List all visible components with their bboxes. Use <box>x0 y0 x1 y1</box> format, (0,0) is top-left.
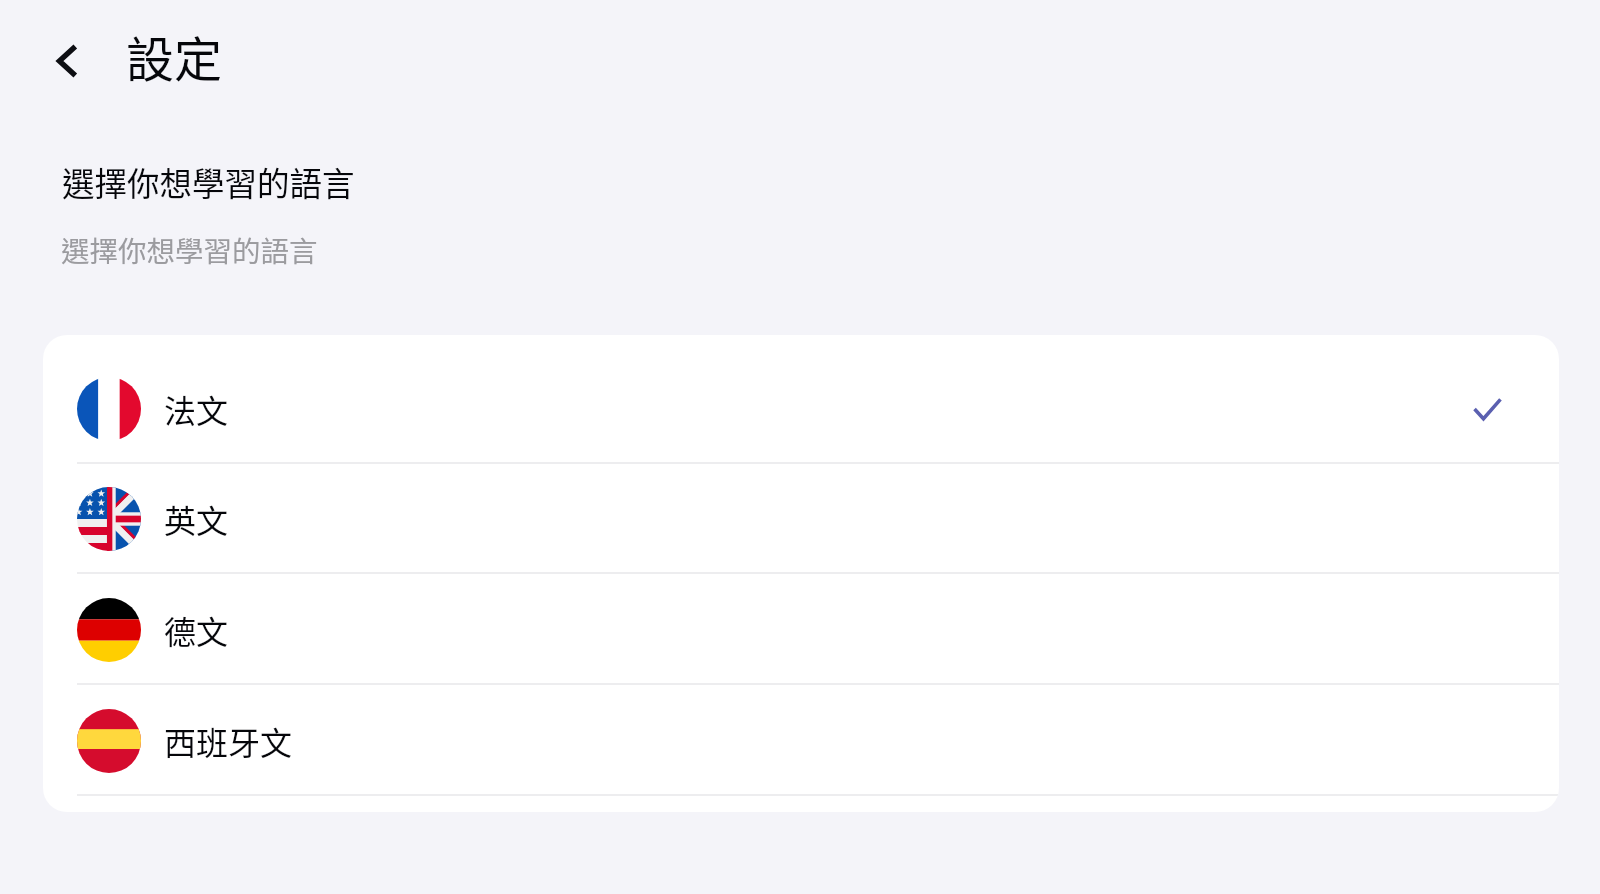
button[interactable]: 德文 <box>43 574 1559 685</box>
staticText: 西班牙文 <box>164 718 293 764</box>
button[interactable]: 法文 <box>43 353 1559 464</box>
staticText: 選擇你想學習的語言 <box>61 229 318 270</box>
staticText: 選擇你想學習的語言 <box>62 158 355 205</box>
staticText: 德文 <box>164 607 229 653</box>
button[interactable]: 英文 <box>43 463 1559 574</box>
button[interactable]: 西班牙文 <box>43 685 1559 796</box>
staticText: 法文 <box>164 386 229 432</box>
button[interactable]: Back <box>41 35 93 87</box>
staticText: 設定 <box>126 21 223 91</box>
staticText: 英文 <box>164 496 229 542</box>
